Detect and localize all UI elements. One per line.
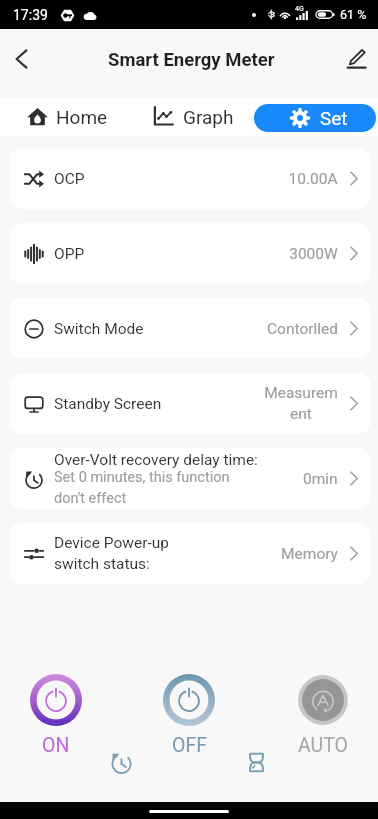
- staticText: Contorlled: [267, 320, 338, 338]
- staticText: Set: [320, 107, 348, 129]
- staticText: 61 %: [340, 7, 367, 22]
- staticText: 3000W: [289, 245, 338, 263]
- button[interactable]: Set: [254, 104, 376, 132]
- button[interactable]: Standby Screen: [9, 373, 371, 434]
- button[interactable]: Back: [0, 41, 42, 83]
- staticText: Over-Volt recovery delay time:: [54, 451, 258, 469]
- button[interactable]: Device Power-up switch status:: [9, 523, 371, 584]
- staticText: Switch Mode: [54, 320, 144, 338]
- staticText: 4G: [295, 5, 304, 13]
- button[interactable]: AUTO: [297, 674, 349, 757]
- button[interactable]: Graph: [126, 97, 252, 136]
- staticText: OPP: [54, 245, 85, 263]
- staticText: 0min: [303, 470, 338, 488]
- staticText: Graph: [183, 106, 234, 128]
- button[interactable]: Edit: [336, 41, 378, 83]
- staticText: Smart Energy Meter: [108, 49, 275, 71]
- staticText: 17:39: [13, 7, 48, 23]
- button[interactable]: OCP: [9, 148, 371, 209]
- button[interactable]: Home: [0, 97, 126, 136]
- button[interactable]: ON: [30, 674, 82, 757]
- button[interactable]: Switch Mode: [9, 298, 371, 359]
- button[interactable]: Countdown: [245, 751, 268, 774]
- staticText: Standby Screen: [54, 395, 162, 413]
- staticText: ON: [42, 734, 70, 757]
- staticText: AUTO: [298, 734, 348, 757]
- staticText: Home: [56, 106, 108, 128]
- staticText: OFF: [172, 734, 207, 757]
- staticText: OCP: [54, 170, 85, 188]
- staticText: Set 0 minutes, this function don't effec…: [54, 469, 260, 506]
- button[interactable]: Timer: [110, 751, 133, 774]
- button[interactable]: OPP: [9, 223, 371, 284]
- staticText: Measurement: [264, 384, 338, 423]
- staticText: 10.00A: [288, 170, 338, 188]
- button[interactable]: Over-Volt recovery delay time:: [9, 448, 371, 509]
- staticText: Device Power-up switch status:: [54, 534, 213, 573]
- button[interactable]: OFF: [163, 674, 215, 757]
- staticText: Memory: [281, 545, 338, 563]
